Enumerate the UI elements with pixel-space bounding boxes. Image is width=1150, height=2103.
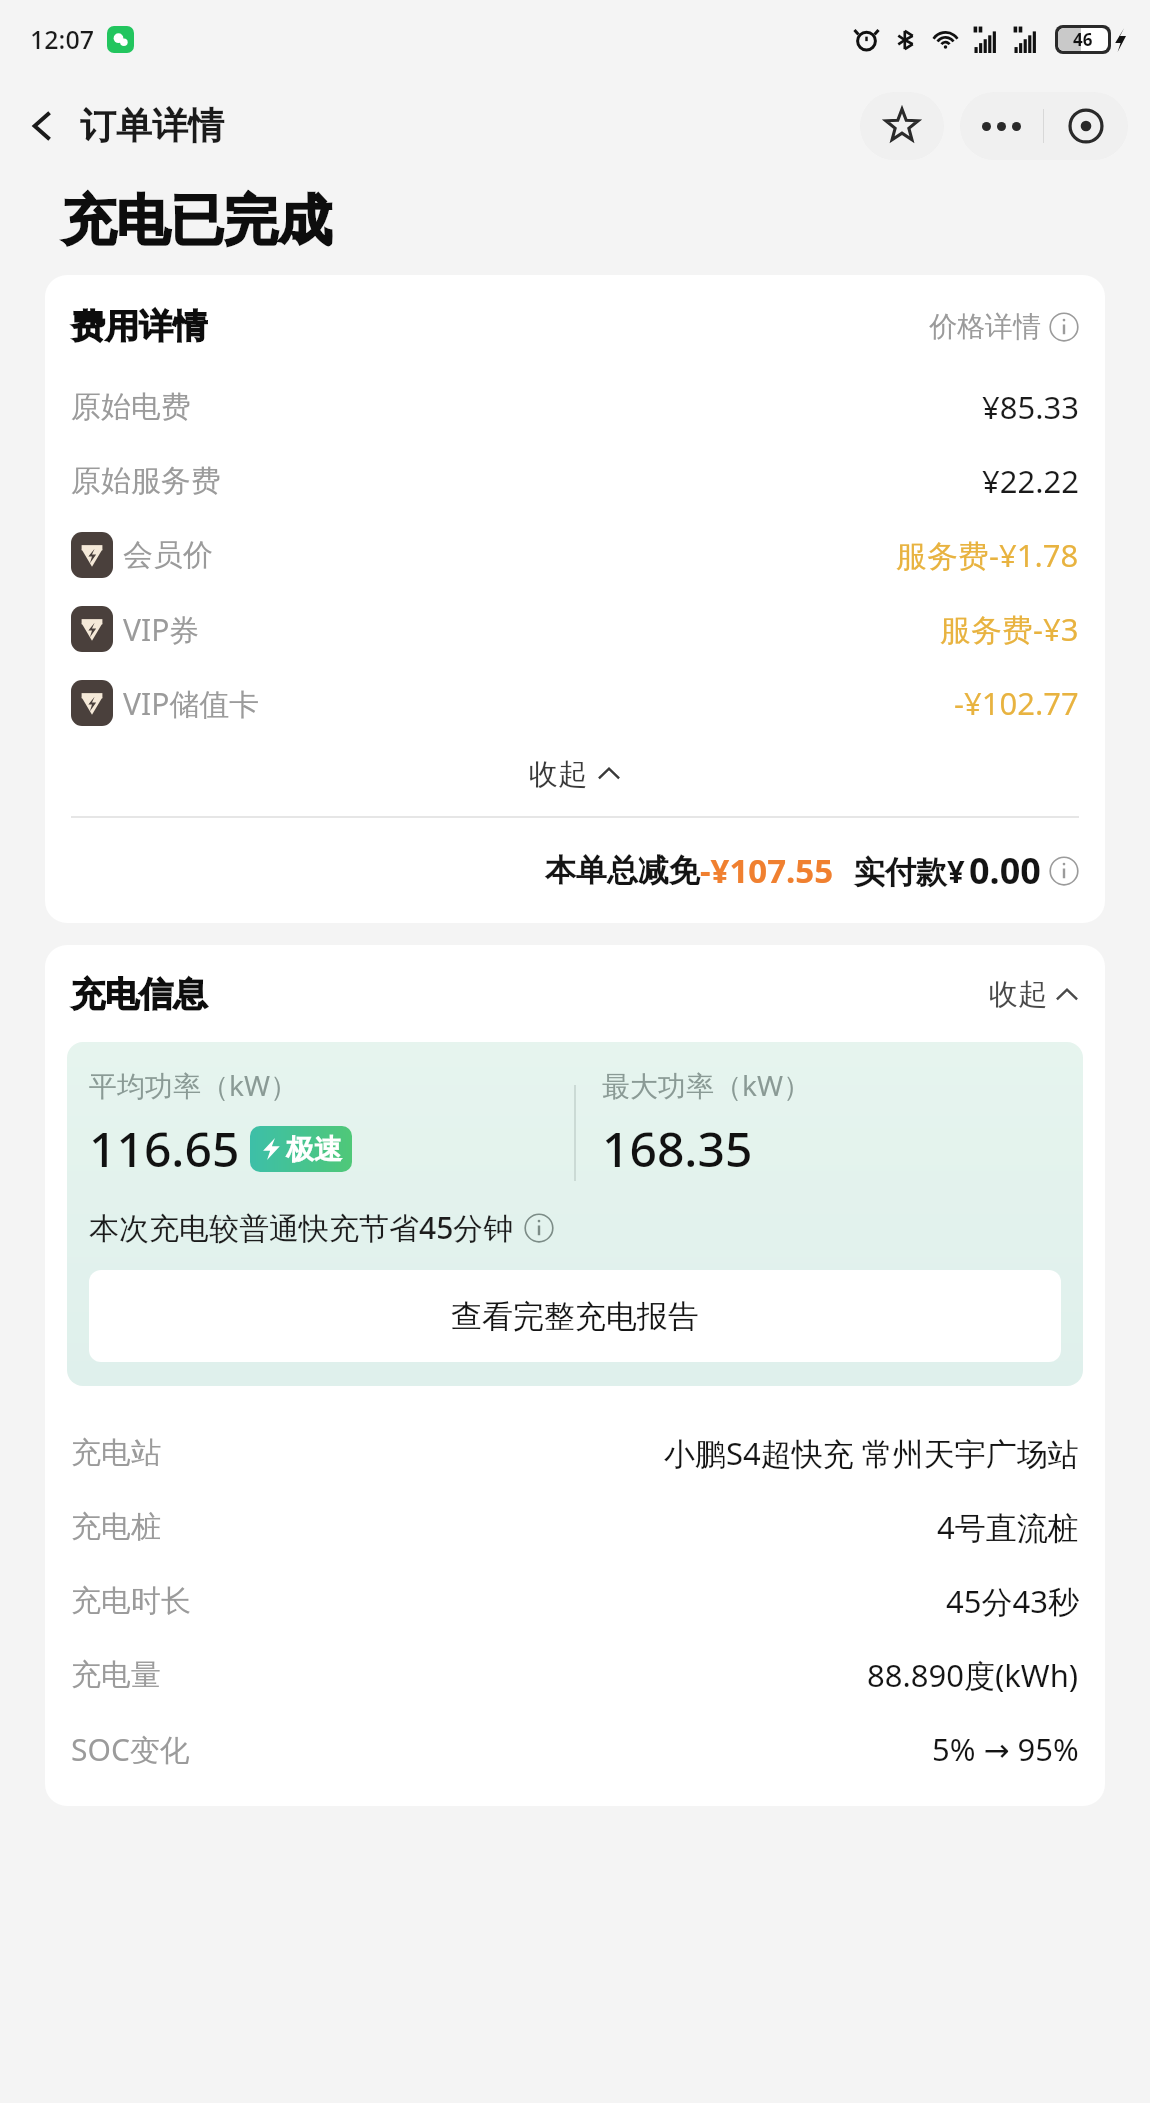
- staticText: 收起: [989, 976, 1047, 1013]
- staticText: 4号直流桩: [937, 1506, 1079, 1548]
- button[interactable]: More options: [960, 92, 1043, 160]
- staticText: 0.00: [969, 846, 1041, 895]
- staticText: 查看完整充电报告: [451, 1297, 699, 1336]
- staticText: 收起: [529, 756, 587, 793]
- staticText: VIP券: [123, 609, 200, 650]
- button[interactable]: Favorite: [860, 92, 944, 160]
- staticText: 充电信息: [71, 973, 207, 1016]
- staticText: 充电已完成: [62, 187, 332, 255]
- staticText: 最大功率（kW）: [602, 1066, 811, 1104]
- staticText: 充电桩: [71, 1508, 161, 1546]
- staticText: 原始服务费: [71, 462, 221, 500]
- staticText: 会员价: [123, 536, 213, 574]
- button[interactable]: Back: [14, 97, 72, 155]
- staticText: 充电量: [71, 1656, 161, 1694]
- staticText: 12:07: [30, 22, 95, 56]
- staticText: 116.65: [89, 1116, 240, 1181]
- button[interactable]: Close: [1044, 92, 1128, 160]
- staticText: SOC变化: [71, 1729, 190, 1770]
- button[interactable]: 本次充电较普通快充节省45分钟: [89, 1207, 554, 1248]
- staticText: 服务费-¥1.78: [896, 534, 1079, 576]
- staticText: 原始电费: [71, 388, 191, 426]
- staticText: 价格详情: [929, 309, 1041, 344]
- staticText: 服务费-¥3: [940, 608, 1079, 650]
- staticText: 极速: [286, 1132, 342, 1167]
- staticText: 88.890度(kWh): [867, 1654, 1079, 1696]
- staticText: 平均功率（kW）: [89, 1066, 298, 1104]
- staticText: VIP储值卡: [123, 683, 260, 724]
- staticText: -¥102.77: [954, 682, 1079, 724]
- staticText: 本单总减免: [545, 851, 700, 890]
- staticText: 费用详情: [71, 305, 207, 348]
- staticText: ¥22.22: [982, 460, 1079, 502]
- button[interactable]: 收起: [989, 976, 1079, 1013]
- staticText: 本次充电较普通快充节省45分钟: [89, 1207, 514, 1248]
- staticText: 168.35: [602, 1116, 753, 1181]
- button[interactable]: 收起: [71, 746, 1079, 802]
- staticText: 45分43秒: [946, 1580, 1079, 1622]
- staticText: 5% → 95%: [932, 1728, 1079, 1770]
- staticText: 充电站: [71, 1434, 161, 1472]
- staticText: ¥85.33: [982, 386, 1079, 428]
- button[interactable]: 查看完整充电报告: [89, 1270, 1061, 1362]
- staticText: 订单详情: [80, 103, 224, 148]
- staticText: 46: [1073, 28, 1093, 51]
- staticText: 充电时长: [71, 1582, 191, 1620]
- staticText: 实付款¥: [854, 850, 965, 892]
- staticText: -¥107.55: [700, 848, 834, 893]
- staticText: 小鹏S4超快充 常州天宇广场站: [664, 1432, 1079, 1474]
- button[interactable]: 价格详情: [929, 309, 1079, 344]
